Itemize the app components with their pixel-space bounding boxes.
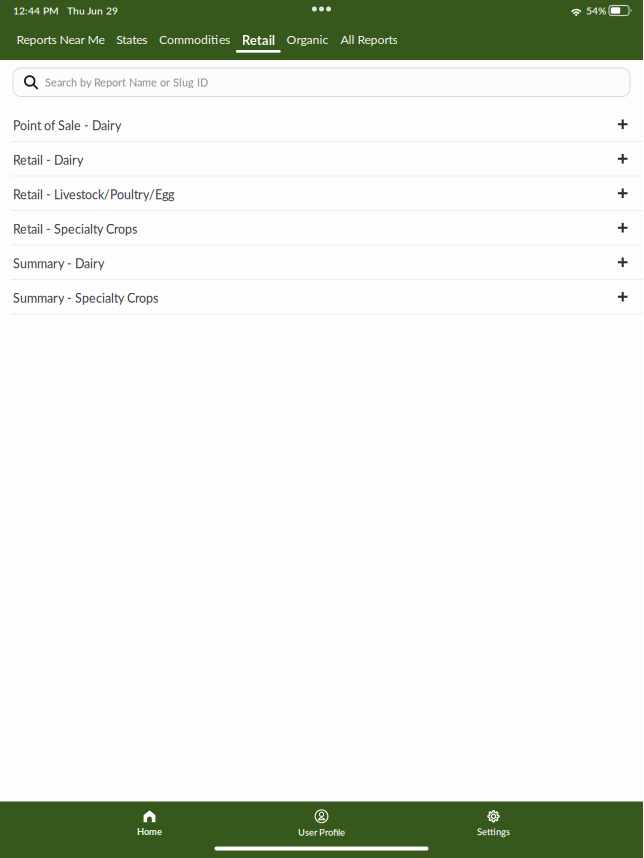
button[interactable]: Point of Sale - Dairy: [0, 107, 643, 142]
button[interactable]: Retail: [236, 21, 281, 60]
staticText: Settings: [477, 826, 510, 837]
button[interactable]: Summary - Specialty Crops: [0, 280, 643, 314]
staticText: Retail - Livestock/Poultry/Egg: [13, 187, 174, 202]
staticText: Organic: [287, 32, 329, 47]
button[interactable]: User Profile: [235, 809, 407, 838]
staticText: 54%: [586, 4, 606, 17]
button[interactable]: Home: [63, 810, 235, 837]
button[interactable]: Summary - Dairy: [0, 245, 643, 280]
staticText: Retail: [242, 32, 275, 48]
staticText: Point of Sale - Dairy: [13, 118, 121, 133]
button[interactable]: States: [110, 21, 153, 60]
staticText: Retail - Dairy: [13, 153, 83, 167]
button[interactable]: Commodities: [153, 21, 236, 60]
staticText: Commodities: [159, 32, 230, 47]
button[interactable]: Organic: [281, 21, 334, 60]
staticText: Summary - Specialty Crops: [13, 291, 158, 305]
staticText: 12:44 PM: [13, 4, 59, 17]
staticText: Thu Jun 29: [67, 4, 118, 17]
button[interactable]: Reports Near Me: [10, 21, 110, 60]
staticText: Reports Near Me: [16, 32, 104, 47]
button[interactable]: Retail - Specialty Crops: [0, 211, 643, 245]
button[interactable]: All Reports: [334, 21, 403, 60]
button[interactable]: Settings: [407, 810, 579, 837]
button[interactable]: Retail - Dairy: [0, 142, 643, 176]
staticText: Home: [137, 826, 162, 837]
staticText: All Reports: [340, 32, 397, 47]
staticText: Search by Report Name or Slug ID: [45, 76, 208, 89]
staticText: User Profile: [298, 827, 345, 838]
staticText: Summary - Dairy: [13, 256, 104, 271]
staticText: Retail - Specialty Crops: [13, 222, 137, 236]
staticText: States: [116, 32, 147, 47]
button[interactable]: Retail - Livestock/Poultry/Egg: [0, 176, 643, 211]
